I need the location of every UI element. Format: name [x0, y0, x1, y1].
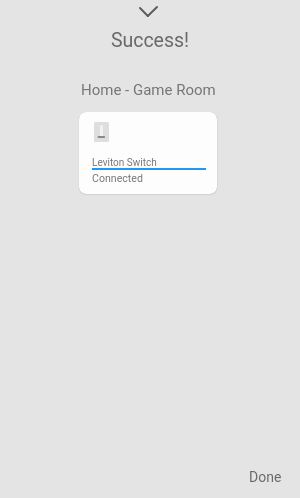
staticText: Home - Game Room — [81, 81, 216, 99]
button[interactable]: Leviton Switch — [79, 112, 217, 194]
staticText: Success! — [0, 29, 300, 52]
staticText: Done — [249, 469, 282, 485]
button[interactable]: Collapse — [128, 0, 168, 22]
staticText: Connected — [92, 172, 143, 184]
staticText: Leviton Switch — [92, 157, 157, 169]
button[interactable]: Done — [241, 461, 290, 493]
